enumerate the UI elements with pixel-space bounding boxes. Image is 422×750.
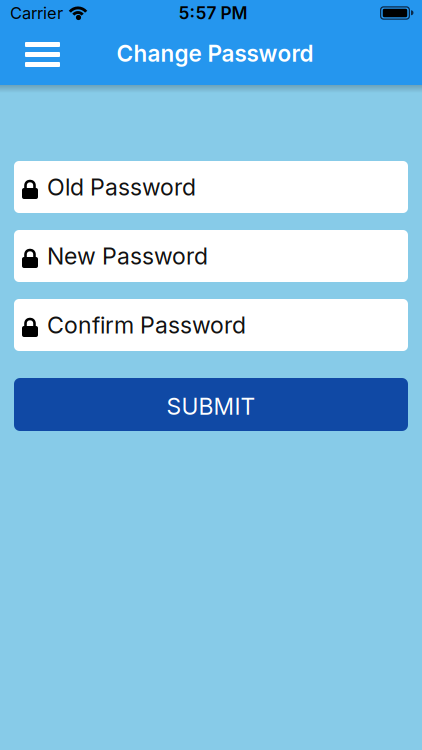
- button[interactable]: Old Password: [14, 161, 408, 213]
- button[interactable]: SUBMIT: [14, 378, 408, 431]
- button[interactable]: Confirm Password: [14, 299, 408, 351]
- button[interactable]: Menu: [0, 44, 60, 69]
- staticText: New Password: [47, 242, 208, 270]
- staticText: Confirm Password: [47, 311, 246, 339]
- button[interactable]: New Password: [14, 230, 408, 282]
- staticText: Old Password: [47, 173, 196, 201]
- staticText: SUBMIT: [166, 393, 255, 420]
- staticText: Carrier: [10, 3, 63, 23]
- staticText: Change Password: [116, 40, 313, 67]
- staticText: 5:57 PM: [178, 3, 247, 23]
